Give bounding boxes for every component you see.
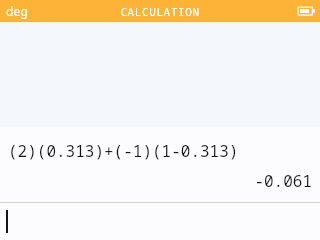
button[interactable]: Battery: [298, 5, 315, 17]
button[interactable]: [0, 203, 320, 240]
button[interactable]: deg: [6, 3, 28, 19]
button[interactable]: (2)(0.313)+(-1)(1-0.313): [0, 127, 320, 192]
staticText: CALCULATION: [120, 4, 200, 19]
staticText: -0.061: [0, 170, 312, 192]
staticText: (2)(0.313)+(-1)(1-0.313): [8, 140, 320, 162]
staticText: deg: [6, 3, 28, 19]
